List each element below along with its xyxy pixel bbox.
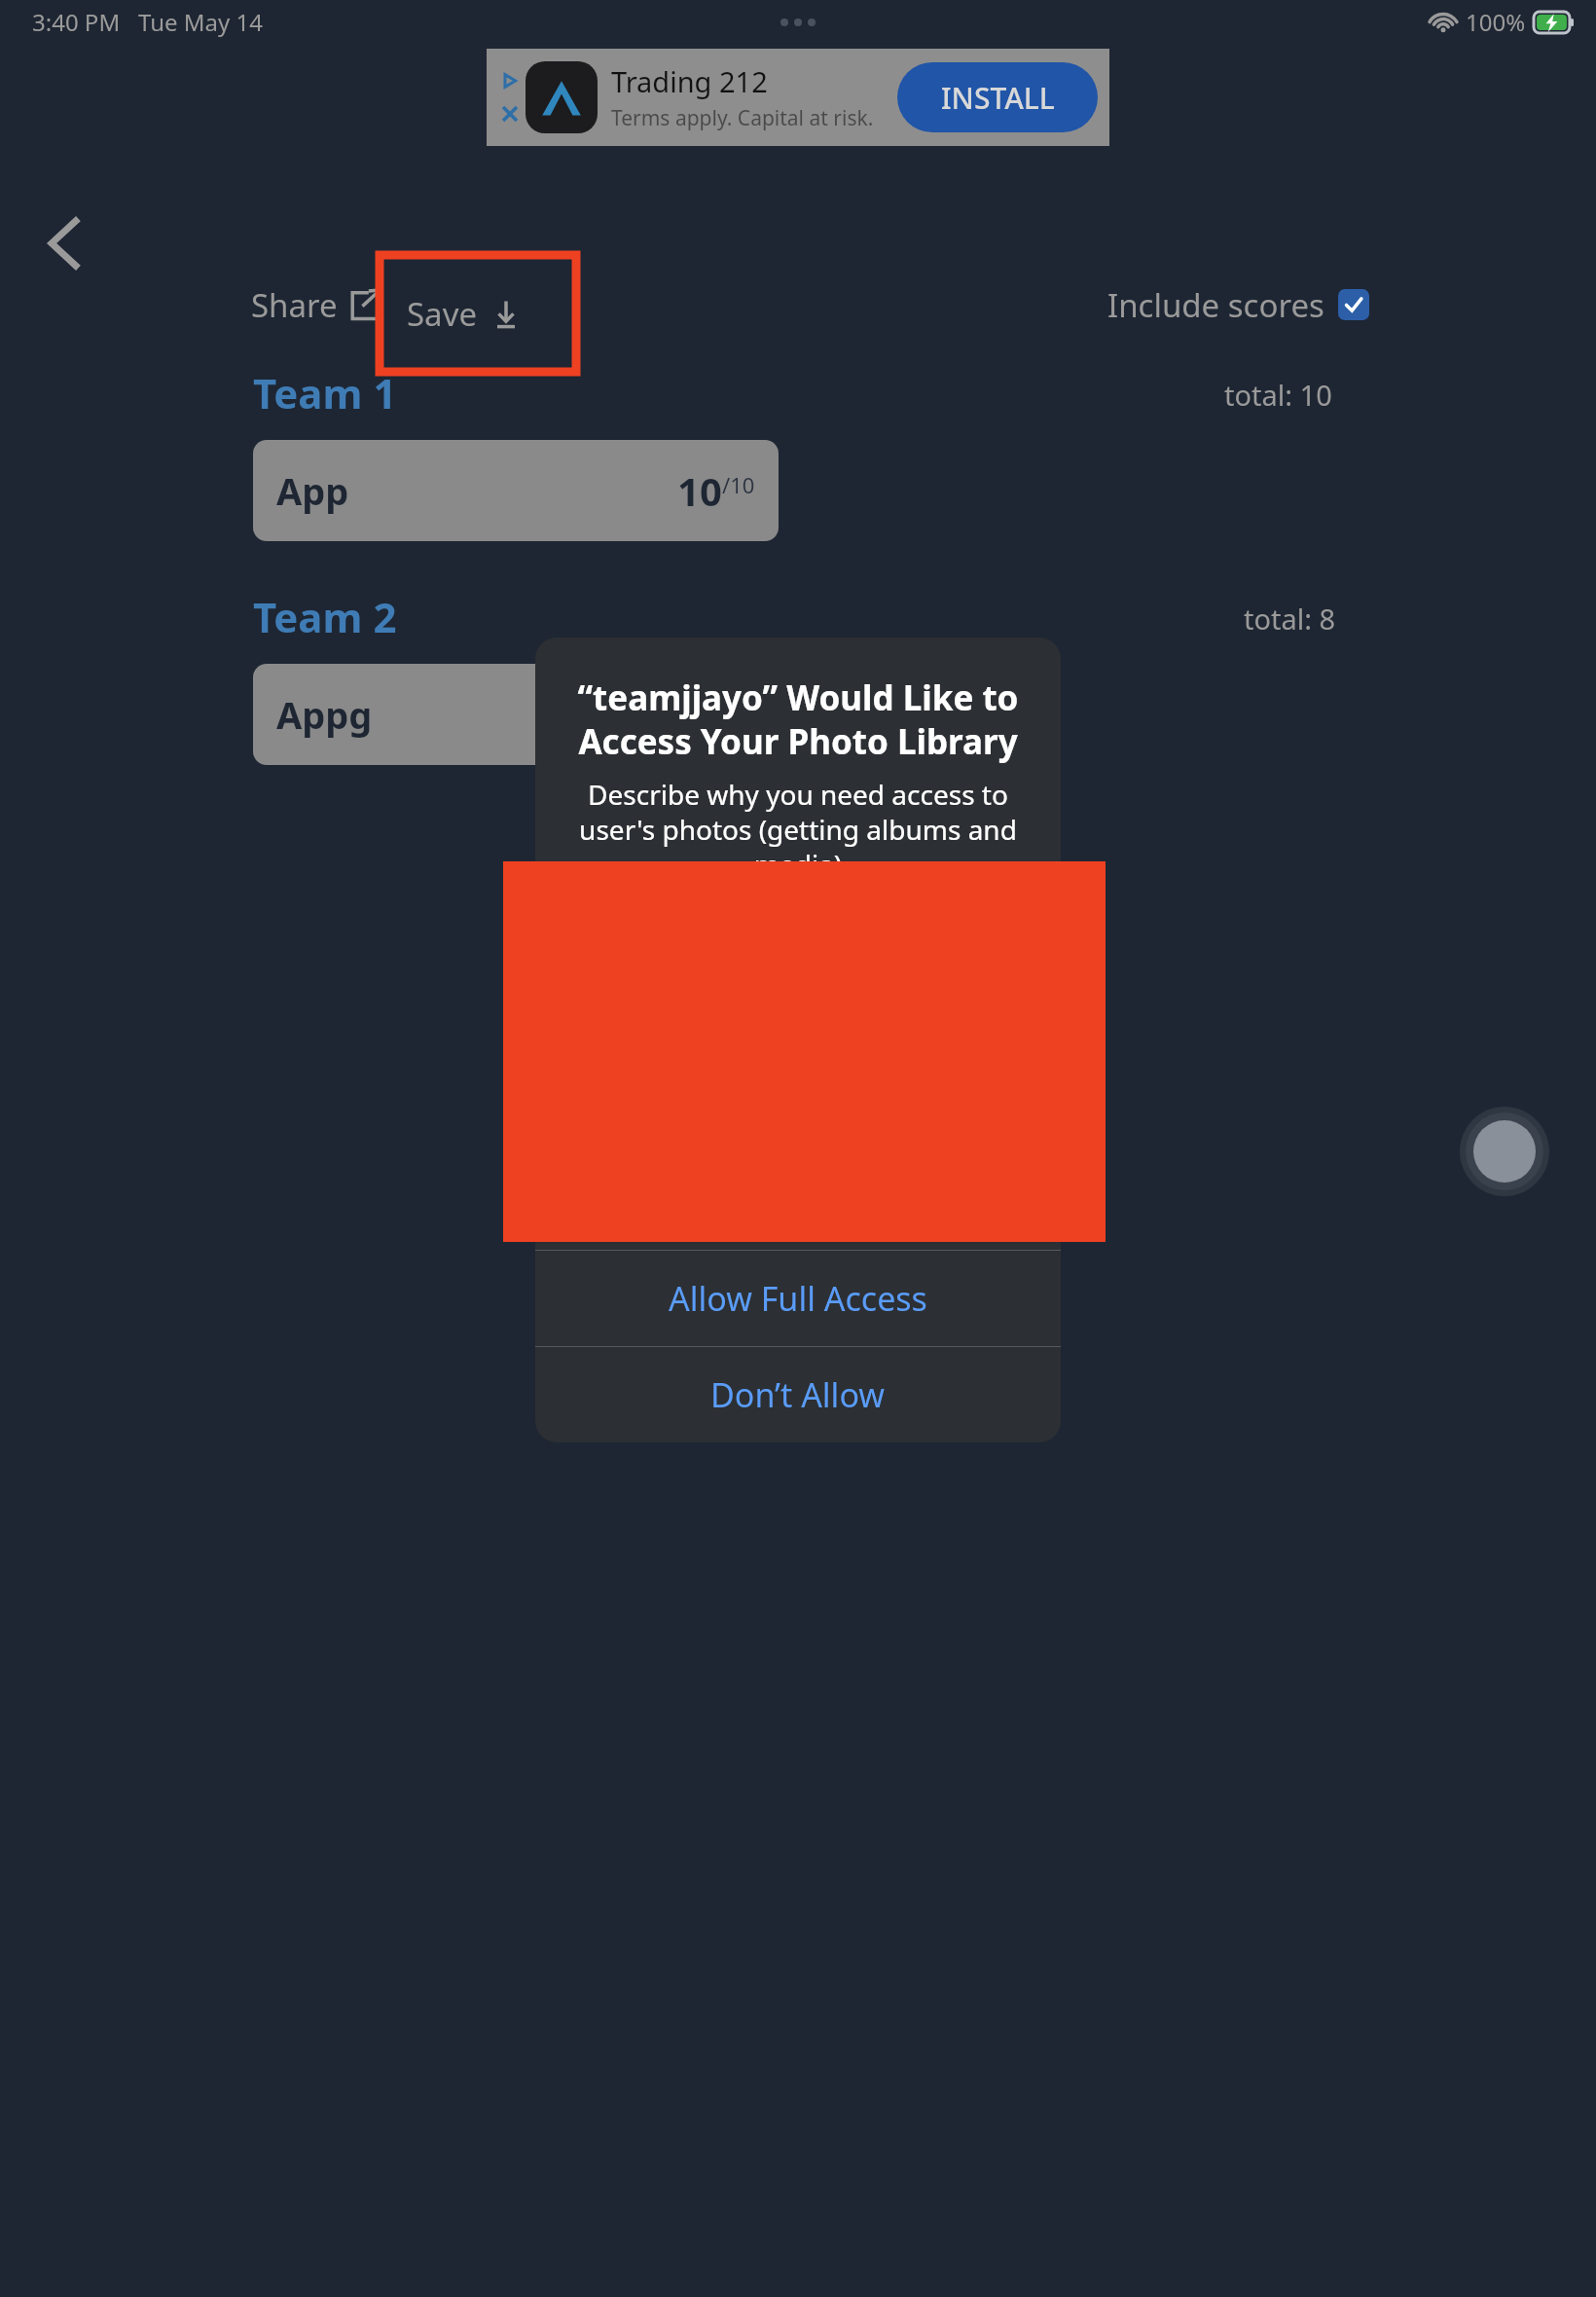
staticText: Team 2 [253,589,397,644]
button[interactable]: App [276,440,755,541]
staticText: /10 [722,470,755,499]
staticText: Trading 212 [611,62,768,100]
staticText: Appg [276,689,373,740]
staticText: Don’t Allow [710,1372,886,1417]
button[interactable]: Don’t Allow [535,1347,1061,1442]
staticText: Describe why you need access to user's p… [564,776,1032,883]
button[interactable]: Save [407,292,521,336]
staticText: 10 [677,464,722,517]
staticText: App [276,465,349,516]
staticText: “teamjjayo” Would Like to Access Your Ph… [568,675,1028,764]
staticText: Save [407,292,478,336]
staticText: INSTALL [941,78,1055,118]
staticText: Tue May 14 [138,6,263,38]
staticText: Share [251,283,338,327]
staticText: Team 1 [253,365,397,420]
staticText: total: 10 [1224,376,1332,414]
staticText: total: 8 [1244,600,1336,638]
button[interactable]: Appg [276,664,755,765]
staticText: Include scores [1107,283,1324,327]
button[interactable]: INSTALL [897,62,1098,132]
staticText: 3:40 PM [32,6,121,38]
button[interactable]: Back [27,206,101,280]
button[interactable]: Allow Full Access [535,1251,1061,1346]
button[interactable]: Assistive Touch [1460,1107,1549,1196]
staticText: Terms apply. Capital at risk. [611,104,874,132]
button[interactable]: Trading 212 [487,49,1109,146]
button[interactable]: Include scores [1107,277,1369,332]
button[interactable]: Limit Access... [535,1154,1061,1250]
staticText: Allow Full Access [669,1276,927,1321]
staticText: 100% [1466,6,1526,38]
button[interactable]: Share [251,277,381,332]
